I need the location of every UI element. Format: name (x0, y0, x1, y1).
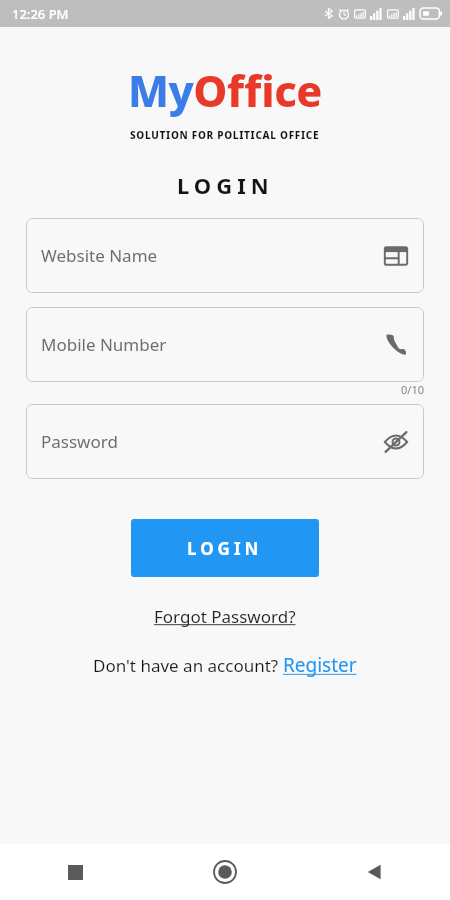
other: Website Name (383, 243, 409, 269)
staticText: 0/10 (401, 382, 424, 397)
staticText: Password (41, 430, 383, 453)
staticText: MyOffice (128, 61, 322, 120)
staticText: Register (283, 652, 357, 678)
button[interactable]: Register (283, 652, 357, 678)
staticText: Don't have an account? (93, 654, 283, 677)
button[interactable]: Home (150, 844, 300, 900)
button[interactable]: Back (300, 844, 450, 900)
button[interactable]: Website Name (26, 218, 424, 293)
staticText: Forgot Password? (154, 605, 296, 628)
button[interactable]: Recent apps (0, 844, 150, 900)
button[interactable]: LOGIN (131, 519, 319, 577)
button[interactable]: Password (26, 404, 424, 479)
staticText: Mobile Number (41, 333, 383, 356)
button[interactable]: Forgot Password? (144, 601, 306, 632)
other: Mobile Number (383, 332, 409, 358)
staticText: Website Name (41, 244, 383, 267)
staticText: LOGIN (177, 170, 274, 200)
button[interactable]: Mobile Number (26, 307, 424, 382)
other: Password (383, 429, 409, 455)
staticText: LOGIN (187, 537, 263, 560)
staticText: 12:26 PM (12, 5, 69, 23)
staticText: SOLUTION FOR POLITICAL OFFICE (130, 128, 320, 142)
